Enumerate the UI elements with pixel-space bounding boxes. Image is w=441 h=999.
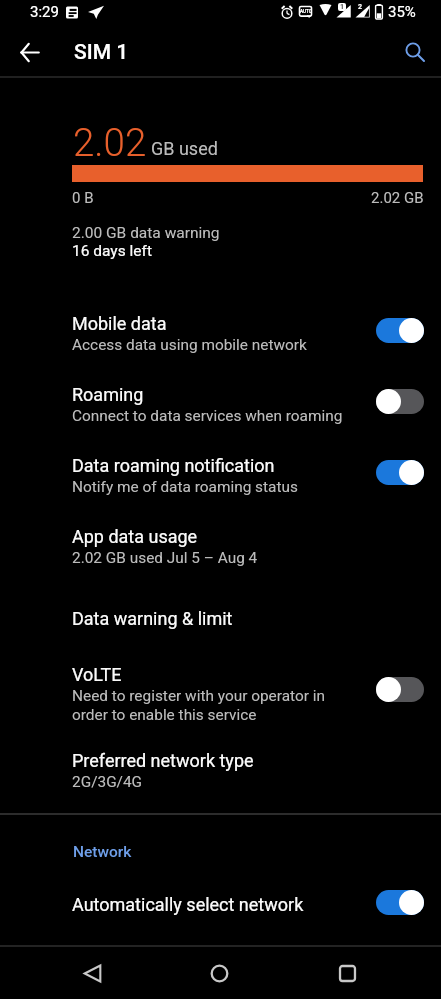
staticText: Automatically select network [72, 894, 304, 915]
button[interactable]: Search [393, 30, 437, 74]
staticText: 0 B [72, 189, 94, 207]
button[interactable]: Recent apps [323, 949, 371, 997]
staticText: Need to register with your operator in o… [72, 687, 325, 724]
button[interactable]: Data roaming notification [0, 447, 441, 501]
staticText: 16 days left [72, 242, 152, 260]
button[interactable]: App data usage [0, 518, 441, 572]
staticText: 1 [340, 3, 345, 11]
button[interactable]: Automatically select network [0, 886, 441, 932]
button[interactable]: Mobile data [0, 305, 441, 359]
button[interactable]: Back [6, 28, 54, 76]
button[interactable]: VoLTE [0, 656, 441, 724]
staticText: Data roaming notification [72, 455, 275, 476]
staticText: SIM 1 [74, 40, 129, 65]
staticText: 3:29 [30, 3, 59, 21]
staticText: 2.02 [73, 120, 147, 165]
staticText: GB used [151, 138, 218, 159]
button[interactable]: Back [68, 949, 116, 997]
button[interactable]: Home [195, 949, 243, 997]
staticText: Preferred network type [72, 750, 254, 771]
staticText: 2.02 GB used Jul 5 – Aug 4 [72, 549, 258, 567]
staticText: VoLTE [72, 664, 122, 685]
button[interactable]: Toggle on [376, 890, 424, 915]
staticText: 35% [388, 3, 416, 21]
staticText: Mobile data [72, 313, 167, 334]
button[interactable]: Data warning & limit [0, 600, 441, 646]
button[interactable]: Toggle off [376, 389, 424, 414]
staticText: 2.02 GB [371, 189, 424, 207]
button[interactable]: Toggle on [376, 460, 424, 485]
staticText: 2 [358, 3, 363, 11]
button[interactable]: Preferred network type [0, 742, 441, 796]
staticText: 2.00 GB data warning [72, 224, 220, 242]
staticText: Data warning & limit [72, 608, 233, 629]
staticText: Network [73, 843, 132, 861]
staticText: Connect to data services when roaming [72, 407, 343, 425]
staticText: 2G/3G/4G [72, 773, 143, 791]
button[interactable]: Roaming [0, 376, 441, 430]
staticText: AUTO [300, 9, 312, 14]
button[interactable]: Toggle off [376, 677, 424, 702]
button[interactable]: Toggle on [376, 318, 424, 343]
staticText: Roaming [72, 384, 144, 405]
staticText: Access data using mobile network [72, 336, 307, 354]
staticText: App data usage [72, 526, 198, 547]
staticText: Notify me of data roaming status [72, 478, 298, 496]
